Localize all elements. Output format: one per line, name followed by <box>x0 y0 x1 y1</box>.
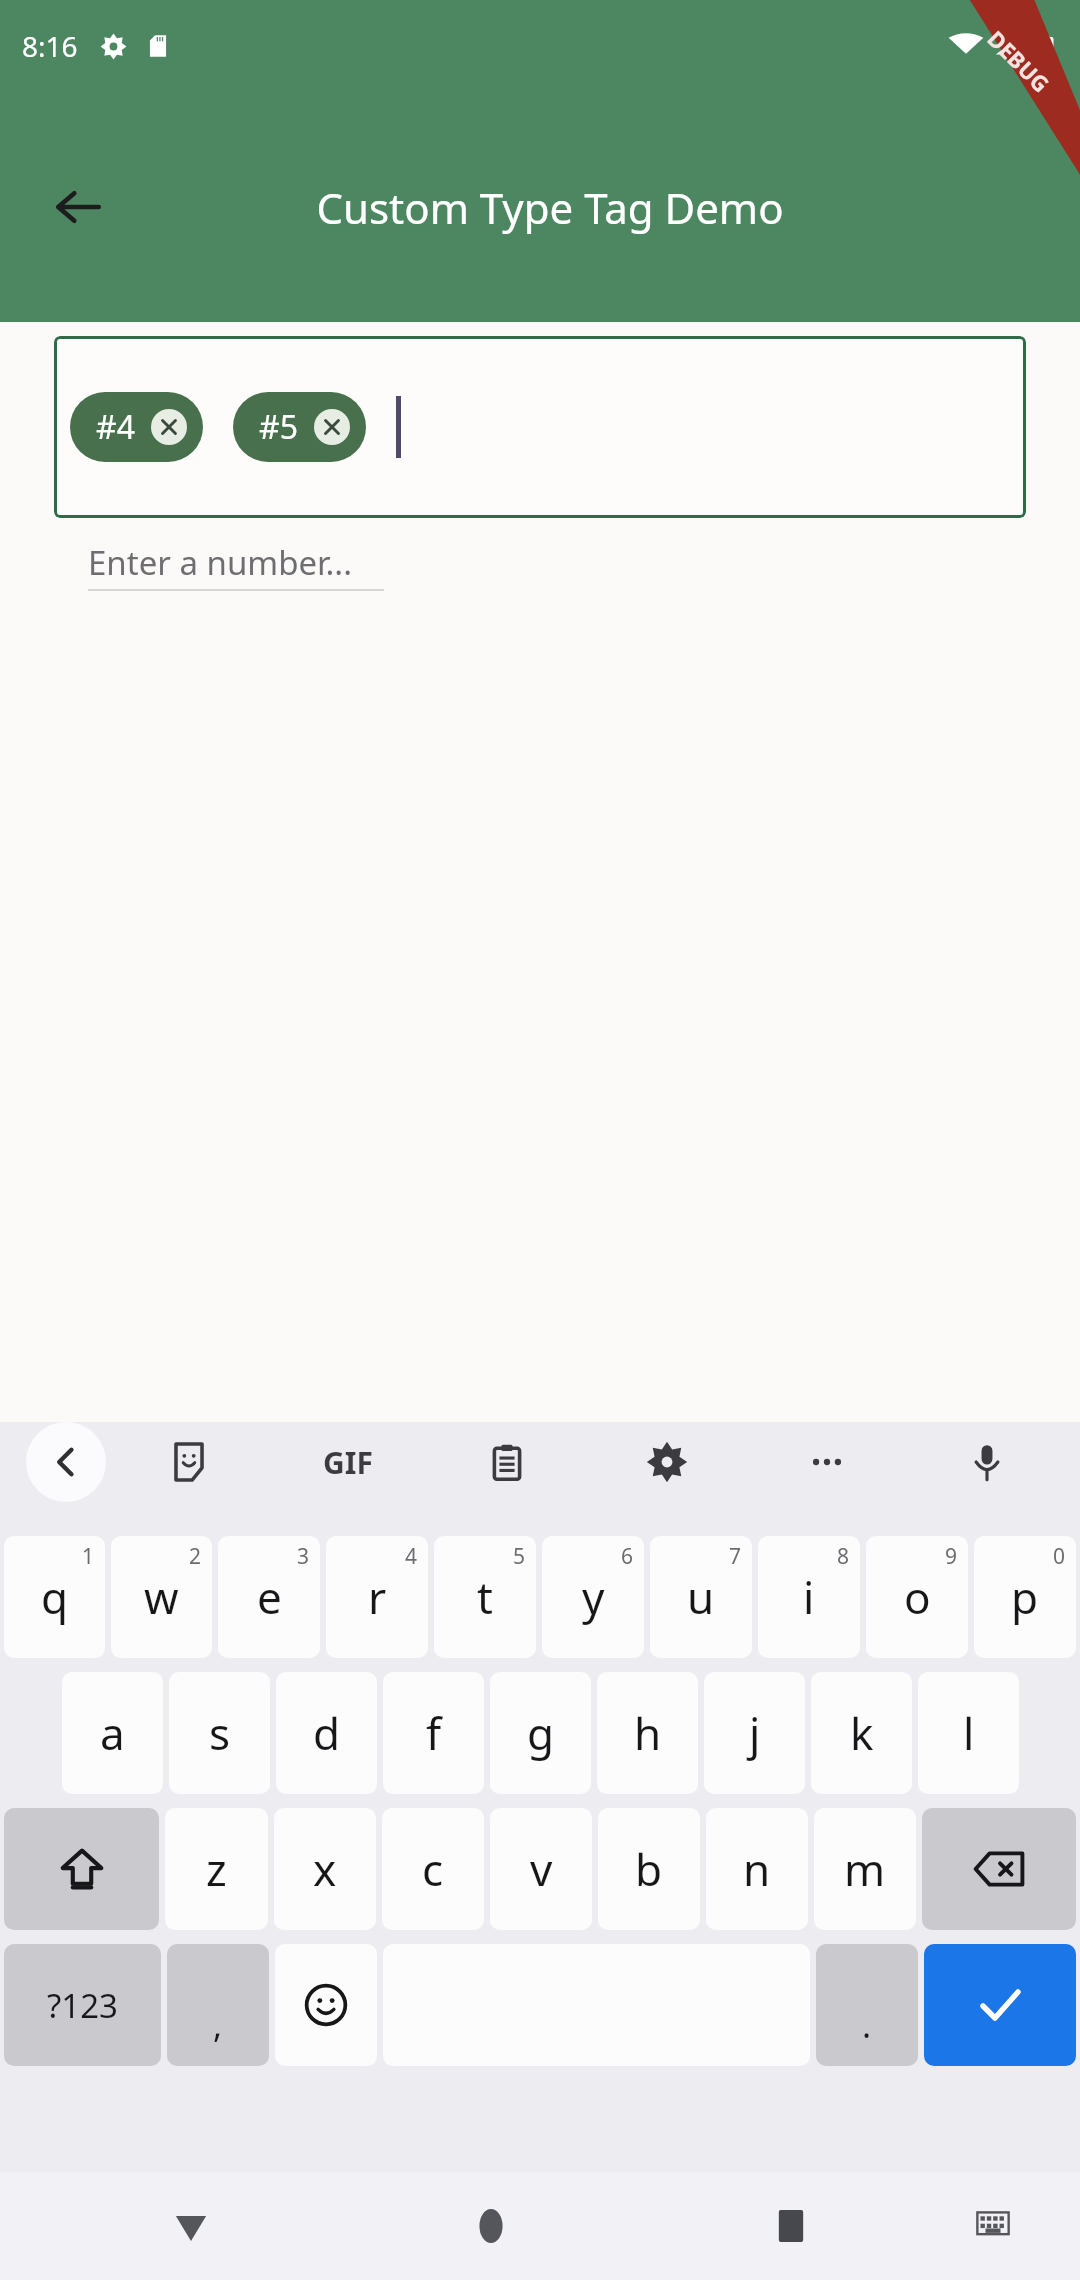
button[interactable]: b <box>598 1808 700 1930</box>
staticText: o <box>904 1567 931 1627</box>
staticText: r <box>368 1567 387 1627</box>
button[interactable]: Remove #5 <box>314 409 350 445</box>
button[interactable]: #4 <box>70 392 203 462</box>
button[interactable]: Clipboard <box>471 1426 543 1498</box>
button[interactable]: m <box>814 1808 916 1930</box>
staticText: GIF <box>323 1442 373 1483</box>
button[interactable]: y <box>542 1536 644 1658</box>
button[interactable]: Back <box>143 2178 239 2274</box>
staticText: i <box>803 1567 815 1627</box>
button[interactable]: Close toolbar <box>26 1422 106 1502</box>
button[interactable]: Enter <box>924 1944 1076 2066</box>
staticText: l <box>963 1703 975 1763</box>
button[interactable]: r <box>326 1536 428 1658</box>
staticText: 2 <box>189 1542 202 1571</box>
button[interactable]: q <box>4 1536 105 1658</box>
button[interactable]: k <box>811 1672 912 1794</box>
button[interactable]: Shift <box>4 1808 159 1930</box>
staticText: Custom Type Tag Demo <box>316 179 784 236</box>
staticText: s <box>209 1703 231 1763</box>
staticText: x <box>313 1839 337 1899</box>
staticText: n <box>743 1839 771 1899</box>
button[interactable]: Remove #4 <box>151 409 187 445</box>
staticText: h <box>634 1703 662 1763</box>
button[interactable]: Symbols <box>4 1944 161 2066</box>
staticText: 0 <box>1053 1542 1066 1571</box>
button[interactable]: h <box>597 1672 698 1794</box>
button[interactable]: j <box>704 1672 805 1794</box>
staticText: 7 <box>729 1542 742 1571</box>
staticText: k <box>850 1703 874 1763</box>
staticText: b <box>635 1839 663 1899</box>
staticText: DEBUG <box>981 23 1056 98</box>
button[interactable]: Emoji <box>275 1944 377 2066</box>
staticText: 9 <box>945 1542 958 1571</box>
staticText: 4 <box>405 1542 418 1571</box>
button[interactable]: Period <box>816 1944 918 2066</box>
staticText: 8 <box>837 1542 850 1571</box>
staticText: d <box>313 1703 341 1763</box>
button[interactable]: l <box>918 1672 1019 1794</box>
button[interactable]: u <box>650 1536 752 1658</box>
staticText: c <box>422 1839 444 1899</box>
staticText: y <box>582 1567 605 1627</box>
staticText: z <box>206 1839 227 1899</box>
staticText: #5 <box>259 405 298 449</box>
button[interactable]: t <box>434 1536 536 1658</box>
button[interactable]: Back <box>36 165 120 249</box>
staticText: q <box>41 1567 69 1627</box>
button[interactable]: Switch keyboard <box>951 2184 1035 2268</box>
staticText: . <box>862 2002 872 2048</box>
button[interactable]: w <box>111 1536 212 1658</box>
staticText: w <box>144 1567 179 1627</box>
staticText: m <box>844 1839 886 1899</box>
staticText: t <box>477 1567 493 1627</box>
button[interactable]: GIF <box>313 1432 383 1493</box>
staticText: a <box>100 1703 125 1763</box>
staticText: j <box>749 1703 761 1763</box>
button[interactable]: Recent apps <box>743 2178 839 2274</box>
staticText: #4 <box>96 405 135 449</box>
button[interactable]: p <box>974 1536 1076 1658</box>
staticText: 3 <box>297 1542 310 1571</box>
button[interactable]: a <box>62 1672 163 1794</box>
button[interactable]: i <box>758 1536 860 1658</box>
staticText: 8:16 <box>22 27 78 65</box>
button[interactable]: Home <box>443 2178 539 2274</box>
staticText: v <box>530 1839 553 1899</box>
staticText: 1 <box>82 1542 95 1571</box>
staticText: g <box>527 1703 555 1763</box>
staticText: ?123 <box>47 1983 118 2028</box>
button[interactable]: #4 <box>54 336 1026 518</box>
button[interactable]: g <box>490 1672 591 1794</box>
staticText: p <box>1011 1567 1039 1627</box>
button[interactable]: v <box>490 1808 592 1930</box>
button[interactable]: Stickers <box>153 1426 225 1498</box>
button[interactable]: More options <box>791 1426 863 1498</box>
button[interactable]: f <box>383 1672 484 1794</box>
button[interactable]: x <box>274 1808 376 1930</box>
button[interactable]: o <box>866 1536 968 1658</box>
staticText: , <box>213 2002 223 2048</box>
button[interactable]: c <box>382 1808 484 1930</box>
button[interactable]: s <box>169 1672 270 1794</box>
button[interactable]: Backspace <box>922 1808 1076 1930</box>
staticText: 6 <box>621 1542 634 1571</box>
staticText: e <box>257 1567 282 1627</box>
staticText: Enter a number... <box>88 540 352 585</box>
button[interactable]: z <box>165 1808 268 1930</box>
staticText: 5 <box>513 1542 526 1571</box>
button[interactable]: e <box>218 1536 320 1658</box>
button[interactable]: #5 <box>233 392 366 462</box>
button[interactable]: Comma <box>167 1944 269 2066</box>
button[interactable]: n <box>706 1808 808 1930</box>
button[interactable]: d <box>276 1672 377 1794</box>
button[interactable]: Settings <box>631 1426 703 1498</box>
staticText: u <box>687 1567 715 1627</box>
button[interactable]: Voice input <box>951 1426 1023 1498</box>
staticText: f <box>426 1703 442 1763</box>
